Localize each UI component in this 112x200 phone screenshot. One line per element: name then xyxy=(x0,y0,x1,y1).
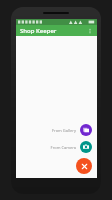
button[interactable]: Close menu xyxy=(76,158,92,174)
staticText: From Camera xyxy=(50,145,76,150)
staticText: From Gallery xyxy=(51,128,76,133)
button[interactable]: From Gallery xyxy=(50,123,93,137)
staticText: Shop Keeper xyxy=(20,27,57,35)
button[interactable]: More options xyxy=(85,26,94,35)
button[interactable]: From Camera xyxy=(49,140,93,154)
